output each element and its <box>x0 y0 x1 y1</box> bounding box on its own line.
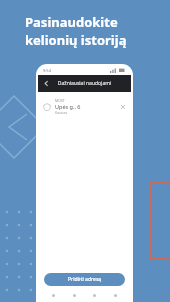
button[interactable]: Nav item 1 <box>49 291 58 300</box>
staticText: 9:54 <box>43 68 51 73</box>
staticText: Pasinaudokite <box>25 13 118 31</box>
staticText: Dažniausiai naudojami adresai <box>55 80 114 87</box>
button[interactable]: Nav item 2 <box>70 291 79 300</box>
button[interactable]: MOST <box>38 96 131 117</box>
button[interactable]: Back <box>38 75 55 92</box>
button[interactable]: Nav item 4 <box>111 291 120 300</box>
staticText: MOST <box>55 98 65 103</box>
staticText: Upės g., 6 <box>55 103 81 110</box>
staticText: Pridėti adresą <box>68 276 102 283</box>
button[interactable]: Pridėti adresą <box>44 273 125 286</box>
button[interactable]: Remove address <box>118 102 127 111</box>
staticText: kelionių istoriją <box>25 31 127 49</box>
button[interactable]: Nav item 3 <box>90 291 99 300</box>
staticText: Kaunas <box>55 110 68 115</box>
